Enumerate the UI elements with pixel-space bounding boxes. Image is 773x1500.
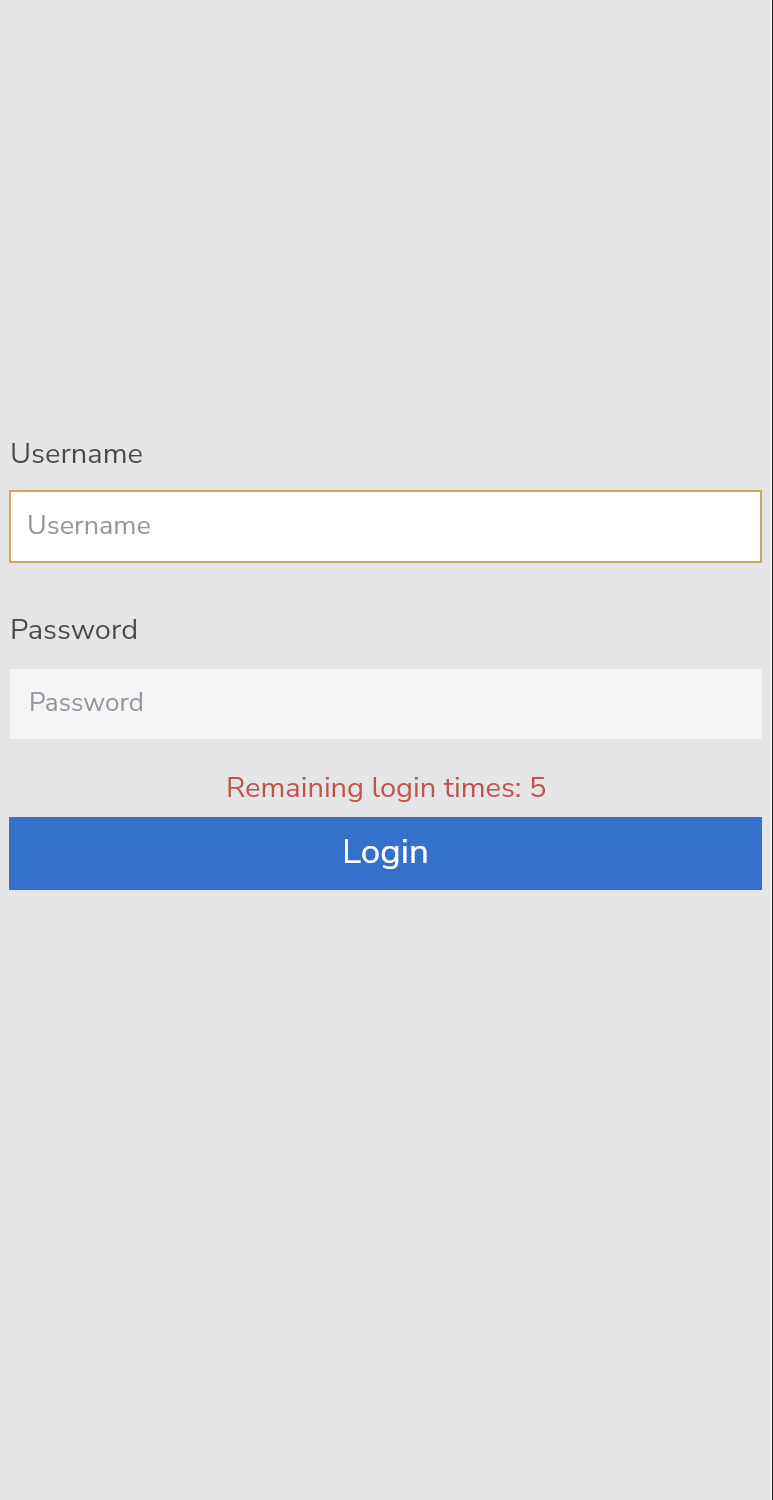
staticText: Login (342, 828, 429, 876)
button[interactable]: Username input field (9, 490, 762, 563)
button[interactable]: Password input field (10, 669, 762, 739)
staticText: Password (10, 610, 139, 650)
staticText: Remaining login times: 5 (226, 768, 547, 808)
staticText: Username (27, 507, 151, 544)
staticText: Password (29, 685, 144, 720)
button[interactable]: Login (9, 817, 762, 890)
staticText: Username (10, 434, 143, 474)
